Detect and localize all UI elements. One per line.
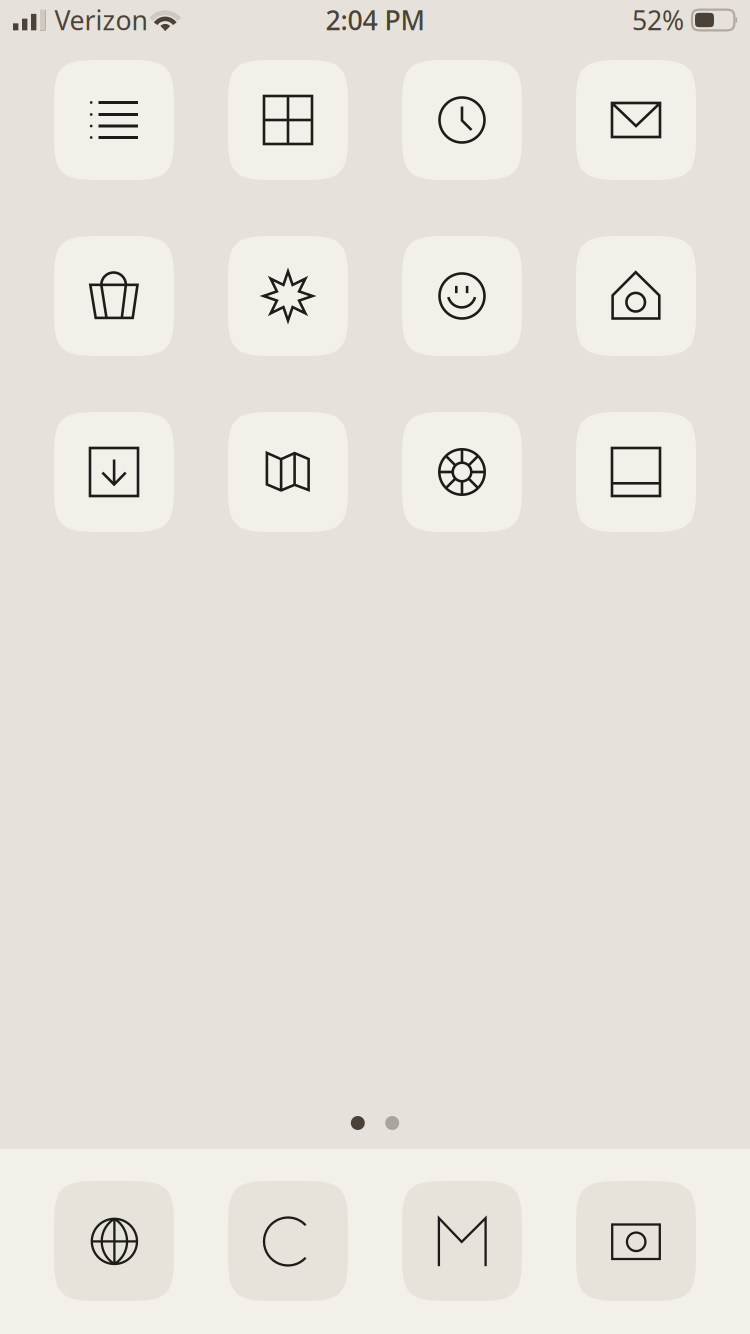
button[interactable]: Safari xyxy=(54,1181,174,1301)
button[interactable]: Reminders xyxy=(54,60,174,180)
button[interactable]: Page 2 xyxy=(385,1116,399,1130)
button[interactable]: Mood xyxy=(402,236,522,356)
button[interactable]: Page 1 xyxy=(351,1116,365,1130)
button[interactable]: Home xyxy=(576,236,696,356)
button[interactable]: Colors xyxy=(402,412,522,532)
button[interactable]: Windows xyxy=(228,60,348,180)
staticText: 52% xyxy=(632,2,684,38)
button[interactable]: Shop xyxy=(54,236,174,356)
button[interactable]: Maps xyxy=(228,412,348,532)
button[interactable]: Mail xyxy=(576,60,696,180)
button[interactable]: Notes xyxy=(576,412,696,532)
button[interactable]: Clock xyxy=(402,60,522,180)
staticText: Verizon xyxy=(54,2,147,38)
button[interactable]: Crescent xyxy=(228,1181,348,1301)
button[interactable]: Downloads xyxy=(54,412,174,532)
button[interactable]: Messages xyxy=(402,1181,522,1301)
button[interactable]: Sparkle xyxy=(228,236,348,356)
staticText: 2:04 PM xyxy=(325,2,424,38)
button[interactable]: Photos xyxy=(576,1181,696,1301)
